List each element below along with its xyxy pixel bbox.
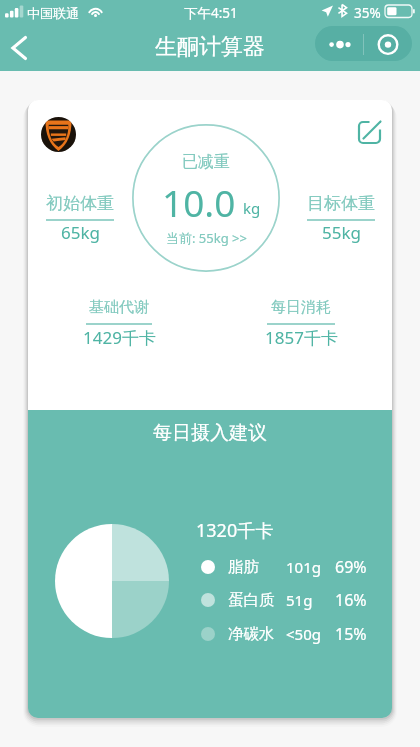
- button[interactable]: More options: [315, 26, 363, 61]
- button[interactable]: 初始体重: [35, 193, 125, 244]
- button[interactable]: 目标体重: [296, 193, 386, 244]
- staticText: 51g: [286, 590, 313, 610]
- staticText: <50g: [286, 624, 321, 644]
- staticText: 初始体重: [46, 193, 114, 214]
- button[interactable]: 基础代谢: [74, 298, 164, 349]
- staticText: 10.0: [162, 177, 236, 227]
- staticText: 1429千卡: [83, 326, 156, 349]
- staticText: 下午4:51: [184, 4, 238, 22]
- staticText: 35%: [354, 4, 381, 22]
- staticText: 中国联通: [27, 5, 79, 21]
- button[interactable]: 每日消耗: [256, 298, 346, 349]
- staticText: 16%: [335, 589, 367, 611]
- button[interactable]: Back: [0, 25, 38, 71]
- staticText: 目标体重: [307, 193, 375, 214]
- staticText: 101g: [286, 557, 321, 577]
- staticText: 1857千卡: [265, 326, 338, 349]
- staticText: 65kg: [61, 221, 100, 244]
- button[interactable]: Profile avatar: [41, 117, 76, 152]
- staticText: 净碳水: [228, 624, 275, 644]
- staticText: 1320千卡: [196, 518, 274, 543]
- staticText: 69%: [335, 556, 367, 578]
- staticText: 脂肪: [228, 557, 259, 577]
- staticText: 15%: [335, 623, 367, 645]
- button[interactable]: 净碳水: [200, 623, 392, 645]
- staticText: 蛋白质: [228, 590, 275, 610]
- button[interactable]: 当前: 55kg >>: [166, 229, 247, 247]
- staticText: 生酮计算器: [155, 33, 265, 61]
- staticText: kg: [243, 198, 261, 218]
- staticText: 每日消耗: [271, 298, 331, 317]
- staticText: 55kg: [322, 221, 361, 244]
- button[interactable]: Edit: [353, 116, 385, 148]
- button[interactable]: Close mini program: [364, 26, 412, 61]
- staticText: 每日摄入建议: [153, 421, 267, 445]
- staticText: 已减重: [182, 152, 230, 172]
- button[interactable]: 蛋白质: [200, 589, 392, 611]
- button[interactable]: 脂肪: [200, 556, 392, 578]
- staticText: 基础代谢: [89, 298, 149, 317]
